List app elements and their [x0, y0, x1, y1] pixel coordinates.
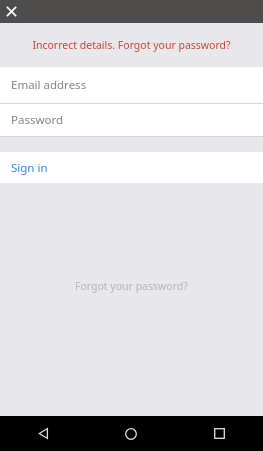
button[interactable]: Home [87, 416, 175, 451]
button[interactable]: Recent apps [175, 416, 263, 451]
staticText: Password [11, 112, 64, 128]
staticText: Email address [11, 77, 87, 93]
staticText: Sign in [11, 160, 48, 176]
button[interactable]: Password [0, 104, 263, 136]
staticText: Forgot your password? [75, 279, 188, 293]
button[interactable]: Email address [0, 67, 263, 103]
button[interactable]: Close [0, 0, 23, 23]
staticText: Incorrect details. Forgot your password? [32, 38, 231, 52]
button[interactable]: Forgot your password? [75, 279, 188, 293]
button[interactable]: Back [0, 416, 87, 451]
button[interactable]: Sign in [0, 152, 263, 183]
